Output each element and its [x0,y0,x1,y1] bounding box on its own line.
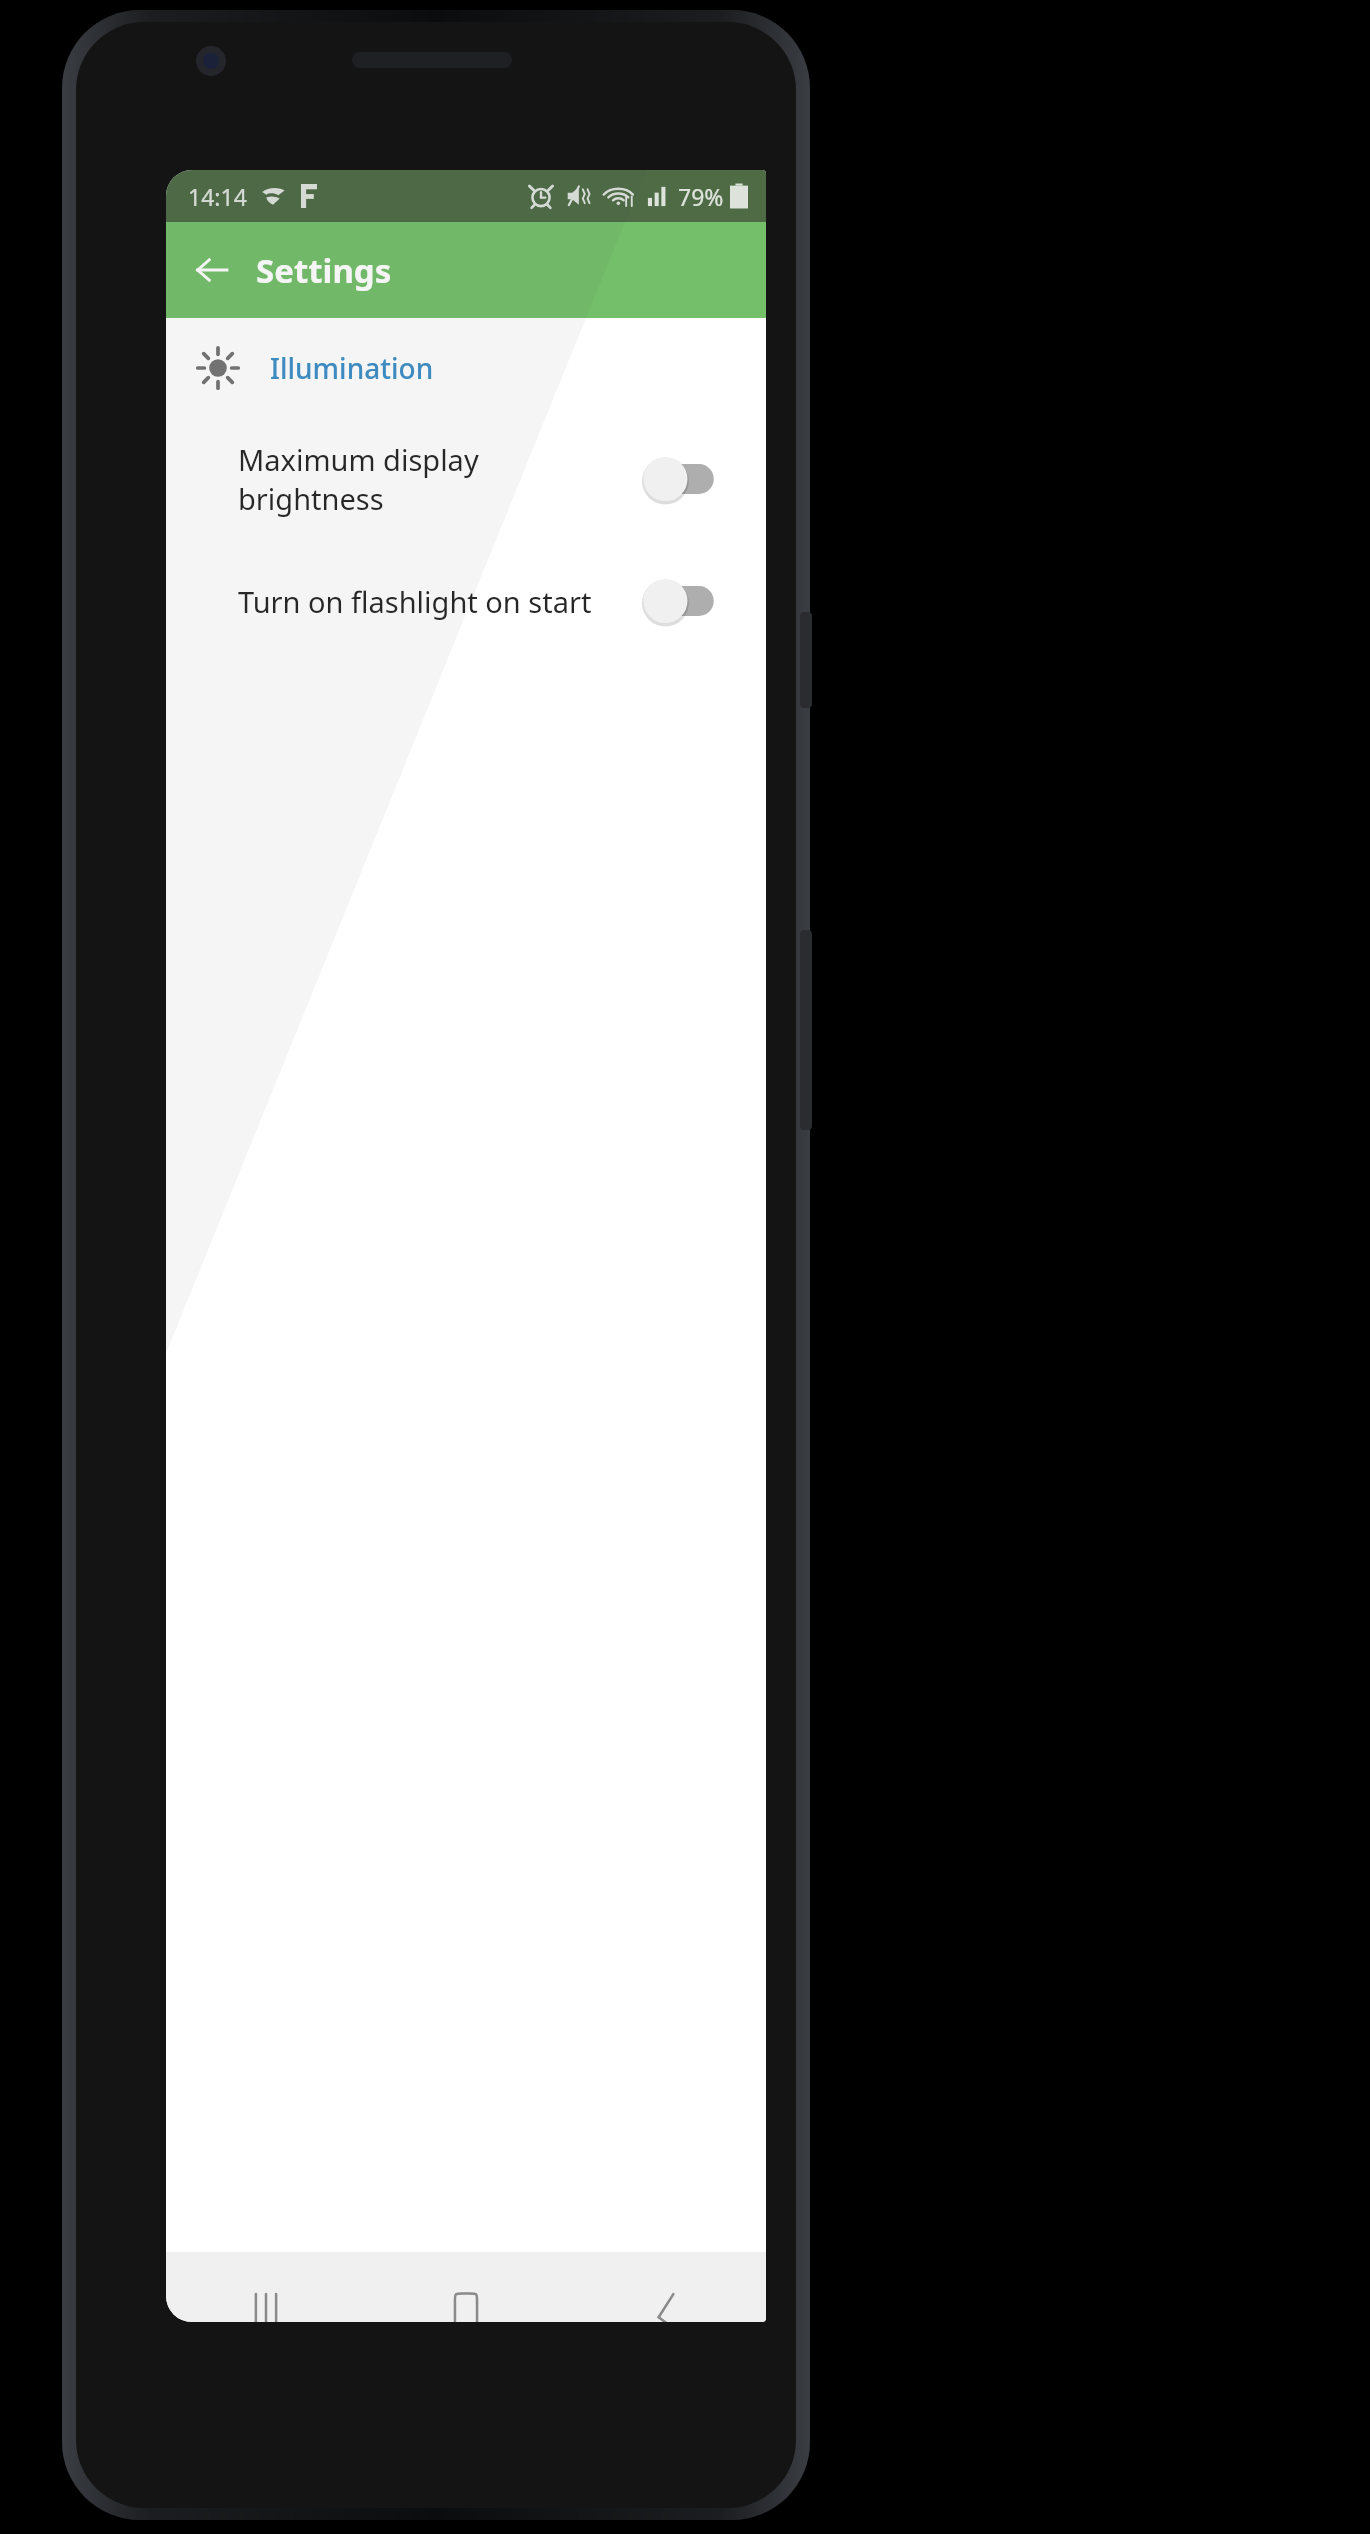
staticText: Illumination [270,349,434,387]
button[interactable]: Back [566,2252,766,2322]
staticText: Turn on flashlight on start [238,582,626,621]
button[interactable]: Back [180,238,244,302]
staticText: Settings [256,248,392,293]
button[interactable]: Turn on flashlight on start [166,540,766,662]
button[interactable]: Toggle [642,455,720,503]
button[interactable]: Toggle [642,577,720,625]
staticText: 14:14 [188,181,247,212]
button[interactable]: Maximum display brightness [166,418,766,540]
button[interactable]: Home [366,2252,566,2322]
staticText: 79% [678,181,724,212]
button[interactable]: Recent apps [166,2252,366,2322]
staticText: Maximum display brightness [238,440,626,518]
